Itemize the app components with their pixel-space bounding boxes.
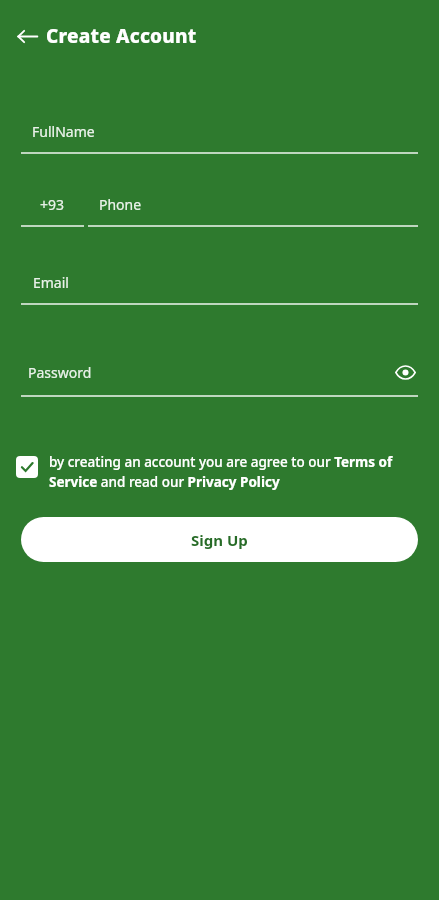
staticText: Email <box>33 273 69 292</box>
button[interactable]: by creating an account you are agree to … <box>16 453 421 491</box>
staticText: FullName <box>32 122 95 141</box>
staticText: by creating an account you are agree to … <box>49 453 421 491</box>
button[interactable]: +93 <box>21 195 84 227</box>
button[interactable]: Back <box>13 22 41 50</box>
staticText: Password <box>28 363 92 382</box>
button[interactable]: Password <box>21 359 418 385</box>
staticText: Create Account <box>46 23 197 49</box>
staticText: +93 <box>40 195 65 214</box>
button[interactable]: FullName <box>21 122 418 154</box>
staticText: Phone <box>99 195 142 214</box>
button[interactable]: Sign Up <box>21 517 418 562</box>
button[interactable]: Email <box>21 273 418 305</box>
button[interactable]: Show password <box>392 359 418 385</box>
button[interactable]: Phone <box>88 195 418 227</box>
staticText: Sign Up <box>191 530 248 550</box>
